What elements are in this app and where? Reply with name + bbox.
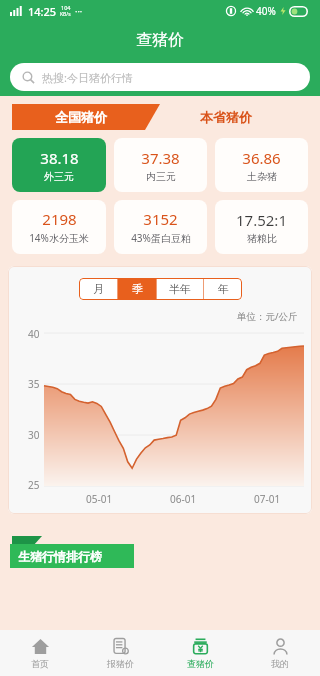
staticText: KB/s	[60, 11, 71, 18]
button[interactable]: 年	[204, 278, 242, 300]
button[interactable]: 热搜:今日猪价行情	[10, 63, 310, 91]
button[interactable]: 17.52:1	[215, 200, 308, 254]
button[interactable]: 季	[118, 278, 156, 300]
staticText: 外三元	[44, 170, 74, 183]
staticText: 半年	[169, 282, 191, 296]
staticText: 月	[93, 282, 104, 296]
button[interactable]: 我的	[240, 630, 320, 676]
staticText: 37.38	[141, 148, 180, 168]
staticText: 全国猪价	[55, 109, 107, 125]
button[interactable]: 本省猪价	[196, 105, 256, 129]
button[interactable]: 半年	[157, 278, 203, 300]
staticText: 43%蛋白豆粕	[131, 231, 191, 245]
staticText: 06-01	[170, 492, 197, 506]
button[interactable]: 37.38	[114, 138, 207, 192]
staticText: 40%	[256, 4, 276, 18]
staticText: 土杂猪	[247, 170, 277, 183]
staticText: 38.18	[40, 148, 79, 168]
staticText: 热搜:今日猪价行情	[42, 70, 133, 85]
button[interactable]: 查猪价	[160, 630, 240, 676]
staticText: 首页	[31, 658, 49, 669]
staticText: 05-01	[86, 492, 113, 506]
staticText: 报猪价	[107, 658, 134, 669]
staticText: 17.52:1	[236, 210, 287, 230]
staticText: 查猪价	[136, 30, 184, 50]
staticText: 年	[218, 282, 229, 296]
staticText: 14%水分玉米	[29, 231, 89, 245]
staticText: 2198	[42, 209, 77, 229]
button[interactable]: 3152	[114, 200, 207, 254]
staticText: 14:25	[28, 4, 57, 19]
staticText: 30	[28, 428, 40, 442]
button[interactable]: 36.86	[215, 138, 308, 192]
button[interactable]: 全国猪价	[12, 104, 160, 130]
button[interactable]: 报猪价	[80, 630, 160, 676]
staticText: 07-01	[254, 492, 281, 506]
staticText: 季	[132, 282, 143, 296]
staticText: ···	[75, 5, 83, 17]
button[interactable]: 生猪行情排行榜	[10, 536, 134, 568]
button[interactable]: 月	[79, 278, 117, 300]
button[interactable]: 首页	[0, 630, 80, 676]
staticText: 单位：元/公斤	[237, 310, 298, 323]
staticText: 内三元	[146, 170, 176, 183]
staticText: 猪粮比	[247, 232, 277, 245]
staticText: 3152	[143, 209, 178, 229]
staticText: 查猪价	[187, 658, 214, 669]
button[interactable]: 38.18	[12, 138, 106, 192]
staticText: 35	[28, 377, 40, 391]
staticText: 36.86	[242, 148, 281, 168]
staticText: 我的	[271, 658, 289, 669]
staticText: 104	[61, 4, 71, 11]
staticText: 40	[28, 327, 40, 341]
staticText: 生猪行情排行榜	[18, 549, 102, 564]
staticText: 本省猪价	[200, 109, 252, 125]
button[interactable]: 2198	[12, 200, 106, 254]
staticText: 25	[28, 478, 40, 492]
